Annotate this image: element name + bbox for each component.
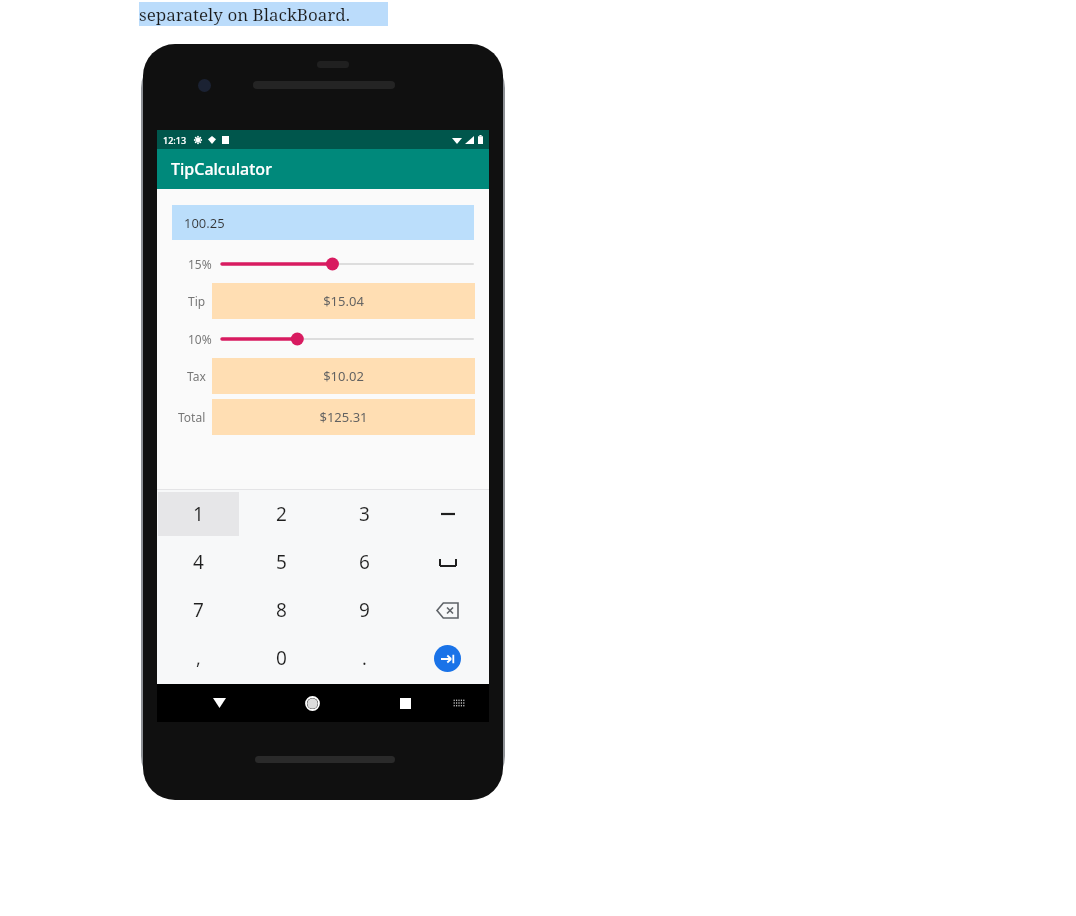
- button[interactable]: Back: [206, 690, 232, 716]
- staticText: 15%: [188, 256, 212, 272]
- button[interactable]: .: [323, 634, 406, 682]
- staticText: $10.02: [323, 367, 364, 385]
- button[interactable]: Backspace: [406, 586, 489, 634]
- staticText: 100.25: [184, 214, 225, 232]
- staticText: 6: [359, 549, 370, 575]
- button[interactable]: Space: [406, 538, 489, 586]
- staticText: $125.31: [319, 408, 368, 426]
- staticText: 8: [276, 597, 287, 623]
- button[interactable]: 7: [157, 586, 240, 634]
- button[interactable]: 9: [323, 586, 406, 634]
- button[interactable]: 8: [240, 586, 323, 634]
- button[interactable]: 15%: [157, 252, 489, 276]
- staticText: 12:13: [163, 134, 187, 146]
- button[interactable]: 1: [158, 492, 239, 536]
- button[interactable]: Switch keyboard: [448, 692, 470, 714]
- staticText: 1: [193, 501, 204, 527]
- staticText: TipCalculator: [171, 158, 272, 180]
- staticText: 10%: [188, 331, 212, 347]
- staticText: 2: [276, 501, 287, 527]
- button[interactable]: 6: [323, 538, 406, 586]
- button[interactable]: 2: [240, 490, 323, 538]
- staticText: 0: [276, 645, 287, 671]
- button[interactable]: Tip: [157, 282, 489, 319]
- button[interactable]: ,: [157, 634, 240, 682]
- button[interactable]: 3: [323, 490, 406, 538]
- button[interactable]: Minus: [406, 490, 489, 538]
- button[interactable]: Total: [157, 398, 489, 435]
- staticText: separately on BlackBoard.: [139, 3, 351, 26]
- staticText: ,: [196, 646, 201, 671]
- staticText: Tip: [188, 293, 206, 309]
- button[interactable]: 100.25: [172, 205, 474, 240]
- button[interactable]: Home: [299, 690, 325, 716]
- button[interactable]: 4: [157, 538, 240, 586]
- button[interactable]: Tax: [157, 357, 489, 394]
- staticText: .: [362, 646, 367, 671]
- button[interactable]: 10%: [157, 327, 489, 351]
- staticText: 7: [193, 597, 204, 623]
- staticText: 9: [359, 597, 370, 623]
- button[interactable]: Recent apps: [392, 690, 418, 716]
- staticText: Total: [178, 409, 206, 425]
- staticText: Tax: [187, 368, 206, 384]
- staticText: 3: [359, 501, 370, 527]
- staticText: $15.04: [323, 292, 364, 310]
- button[interactable]: 5: [240, 538, 323, 586]
- staticText: 5: [276, 549, 287, 575]
- staticText: 4: [193, 549, 204, 575]
- button[interactable]: Enter: [406, 634, 489, 682]
- button[interactable]: 0: [240, 634, 323, 682]
